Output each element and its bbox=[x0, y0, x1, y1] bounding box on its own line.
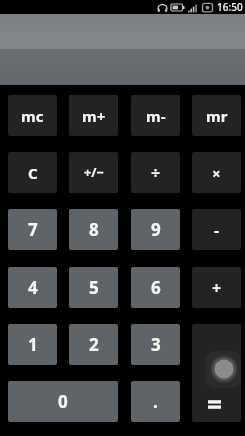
button[interactable]: + bbox=[192, 267, 241, 308]
staticText: 6 bbox=[151, 276, 161, 299]
staticText: 1 bbox=[28, 333, 38, 356]
button[interactable]: mr bbox=[192, 95, 241, 136]
staticText: 2 bbox=[89, 333, 99, 356]
staticText: 8 bbox=[89, 218, 99, 241]
staticText: 5 bbox=[89, 276, 99, 299]
button[interactable]: mc bbox=[8, 95, 57, 136]
staticText: mc bbox=[21, 106, 44, 126]
button[interactable]: m+ bbox=[69, 95, 118, 136]
button[interactable] bbox=[205, 351, 241, 388]
button[interactable]: +/− bbox=[69, 152, 118, 193]
button[interactable]: m- bbox=[131, 95, 180, 136]
button[interactable]: 3 bbox=[131, 324, 180, 365]
button[interactable]: 5 bbox=[69, 267, 118, 308]
staticText: m+ bbox=[82, 106, 106, 126]
button[interactable]: - bbox=[192, 209, 241, 250]
button[interactable]: . bbox=[131, 381, 180, 422]
staticText: × bbox=[212, 163, 221, 183]
button[interactable]: 4 bbox=[8, 267, 57, 308]
button[interactable]: 6 bbox=[131, 267, 180, 308]
button[interactable]: 8 bbox=[69, 209, 118, 250]
staticText: +/− bbox=[84, 164, 104, 181]
staticText: 16:50 bbox=[217, 0, 243, 14]
staticText: 4 bbox=[28, 276, 38, 299]
staticText: . bbox=[153, 390, 158, 413]
button[interactable]: × bbox=[192, 152, 241, 193]
staticText: 9 bbox=[151, 218, 161, 241]
button[interactable]: 9 bbox=[131, 209, 180, 250]
staticText: m- bbox=[146, 106, 166, 126]
staticText: C bbox=[28, 163, 38, 183]
staticText: 3 bbox=[151, 333, 161, 356]
button[interactable]: 0 bbox=[8, 381, 118, 422]
button[interactable] bbox=[192, 324, 241, 422]
button[interactable]: ÷ bbox=[131, 152, 180, 193]
staticText: mr bbox=[206, 106, 228, 126]
staticText: - bbox=[214, 219, 220, 241]
staticText: + bbox=[212, 277, 222, 299]
staticText: 0 bbox=[58, 390, 68, 413]
button[interactable]: 1 bbox=[8, 324, 57, 365]
staticText: ÷ bbox=[151, 162, 161, 184]
button[interactable]: 2 bbox=[69, 324, 118, 365]
button[interactable]: 7 bbox=[8, 209, 57, 250]
staticText: 7 bbox=[28, 218, 38, 241]
button[interactable]: C bbox=[8, 152, 57, 193]
